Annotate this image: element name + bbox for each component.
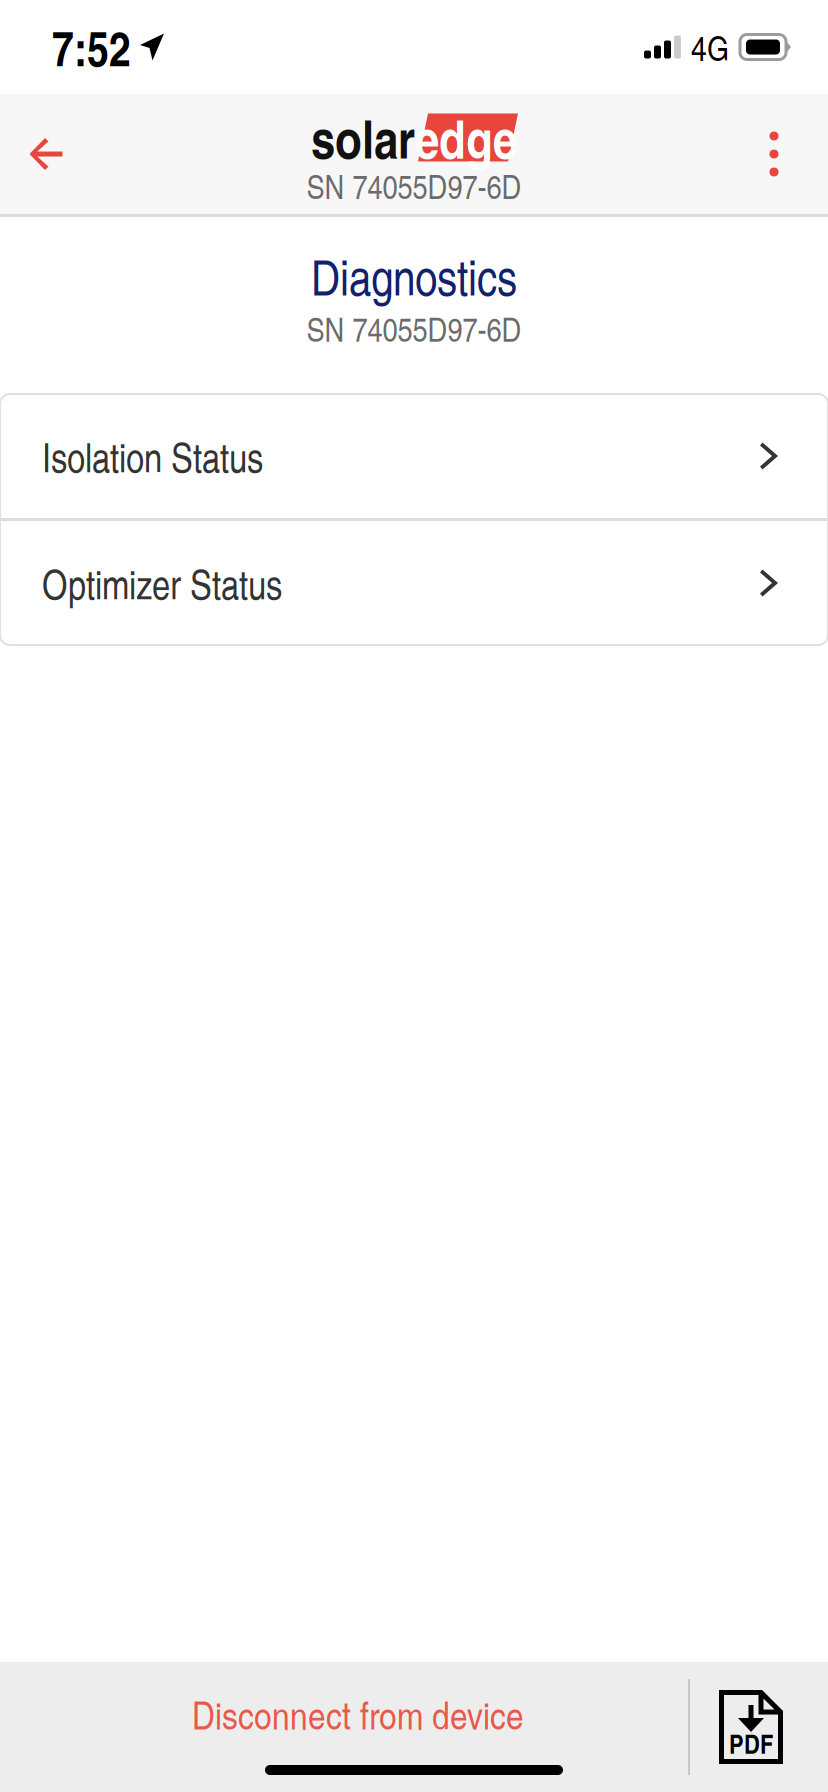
- button[interactable]: Isolation Status: [0, 394, 828, 518]
- button[interactable]: Optimizer Status: [0, 521, 828, 645]
- staticText: Optimizer Status: [42, 556, 282, 610]
- button[interactable]: Back: [0, 94, 92, 214]
- staticText: 4G: [691, 23, 729, 71]
- staticText: edge: [415, 99, 517, 175]
- button[interactable]: Export PDF report: [690, 1664, 828, 1790]
- button[interactable]: More options: [720, 94, 828, 214]
- staticText: Disconnect from device: [192, 1687, 524, 1740]
- staticText: SN 74055D97-6D: [306, 163, 521, 208]
- staticText: Diagnostics: [311, 242, 517, 309]
- staticText: solar: [311, 99, 415, 175]
- staticText: SN 74055D97-6D: [306, 305, 521, 351]
- staticText: PDF: [729, 1724, 773, 1762]
- staticText: Isolation Status: [42, 429, 263, 483]
- button[interactable]: Disconnect from device: [0, 1664, 688, 1790]
- staticText: 7:52: [52, 13, 131, 81]
